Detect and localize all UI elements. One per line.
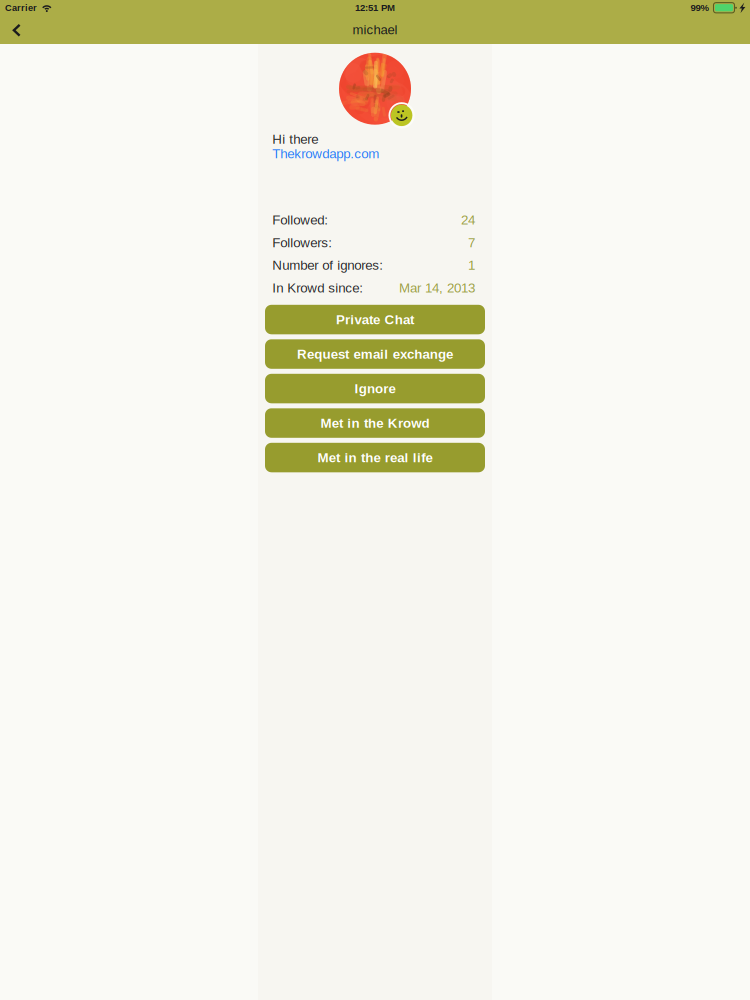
staticText: Met in the real life xyxy=(318,450,432,465)
staticText: 1 xyxy=(468,258,475,273)
staticText: 7 xyxy=(468,235,475,250)
staticText: Hi there xyxy=(272,132,318,147)
staticText: Met in the Krowd xyxy=(320,416,429,430)
staticText: In Krowd since: xyxy=(272,280,363,295)
button[interactable]: Request email exchange xyxy=(265,339,485,369)
staticText: Ignore xyxy=(354,381,395,396)
staticText: 24 xyxy=(461,212,475,227)
staticText: 12:51 PM xyxy=(355,2,395,13)
staticText: 99% xyxy=(690,2,709,13)
staticText: Followed: xyxy=(272,212,328,227)
staticText: Carrier xyxy=(5,3,37,13)
staticText: Number of ignores: xyxy=(272,258,383,273)
button[interactable]: Private Chat xyxy=(265,305,485,334)
staticText: Request email exchange xyxy=(297,347,453,361)
staticText: Private Chat xyxy=(336,312,414,327)
staticText: Thekrowdapp.com xyxy=(272,146,379,161)
button[interactable]: Met in the real life xyxy=(265,443,485,472)
button[interactable]: Ignore xyxy=(265,374,485,403)
button[interactable]: Met in the Krowd xyxy=(265,408,485,438)
staticText: Followers: xyxy=(272,235,332,250)
button[interactable]: Back xyxy=(0,17,43,42)
staticText: michael xyxy=(352,22,397,37)
staticText: Mar 14, 2013 xyxy=(399,280,475,295)
